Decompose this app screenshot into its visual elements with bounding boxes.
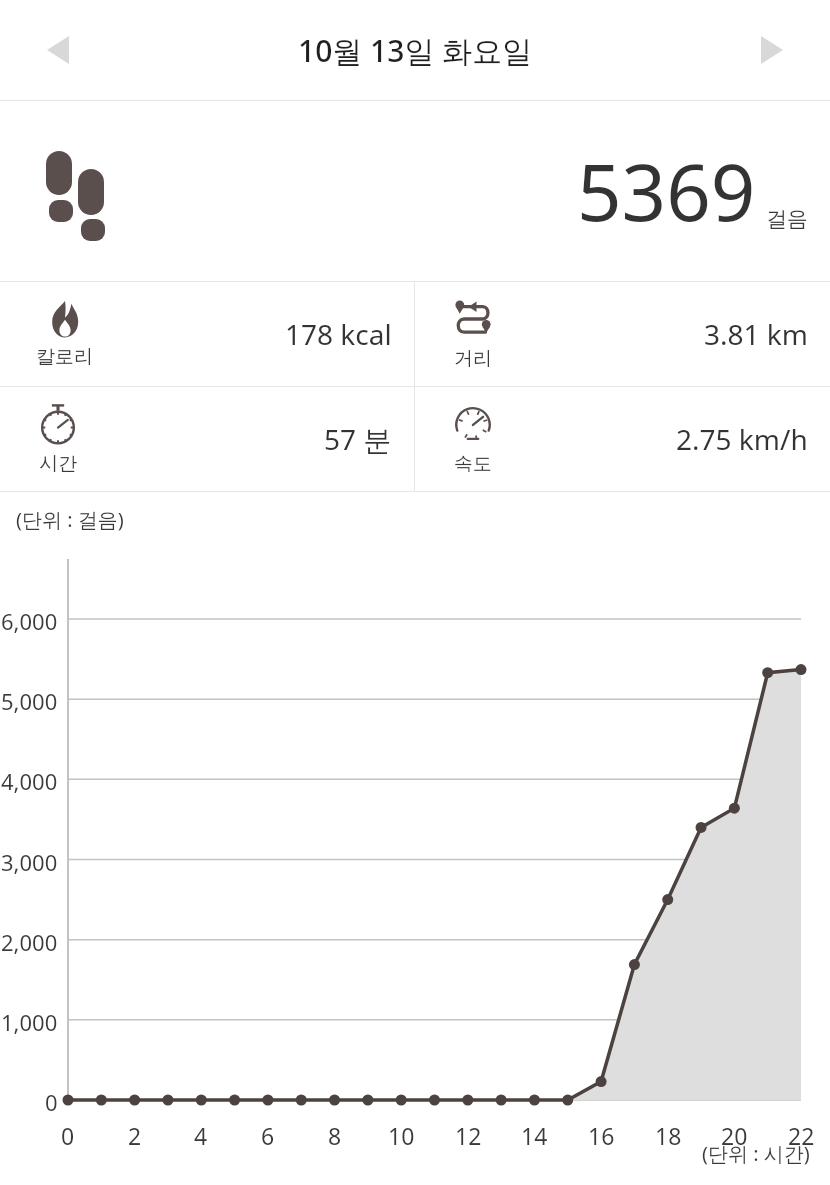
staticText: 2.75 km/h: [676, 420, 808, 458]
staticText: 3.81 km: [704, 315, 808, 353]
staticText: 8: [328, 1120, 342, 1151]
staticText: 6,000: [1, 606, 58, 636]
staticText: 18: [655, 1120, 682, 1151]
button[interactable]: 속도: [415, 387, 830, 491]
staticText: 20: [721, 1120, 748, 1151]
staticText: 1,000: [1, 1007, 58, 1037]
staticText: 6: [261, 1120, 275, 1151]
staticText: 0: [45, 1087, 58, 1117]
staticText: 칼로리: [36, 345, 93, 369]
button[interactable]: 시간: [0, 387, 414, 491]
staticText: 2,000: [1, 927, 58, 957]
button[interactable]: 칼로리: [0, 282, 414, 386]
staticText: 4: [194, 1120, 208, 1151]
staticText: 22: [788, 1120, 815, 1151]
staticText: 57 분: [324, 420, 392, 458]
staticText: 10월 13일 화요일: [298, 30, 533, 71]
button[interactable]: 5369: [0, 101, 830, 281]
staticText: (단위 : 시간): [702, 1140, 810, 1167]
staticText: 5,000: [1, 686, 58, 716]
button[interactable]: 거리: [415, 282, 830, 386]
staticText: 2: [128, 1120, 142, 1151]
staticText: 거리: [454, 347, 492, 371]
staticText: 14: [521, 1120, 548, 1151]
button[interactable]: Previous day: [18, 10, 98, 90]
staticText: 속도: [454, 452, 492, 476]
staticText: 3,000: [1, 847, 58, 877]
staticText: 4,000: [1, 766, 58, 796]
staticText: 시간: [39, 452, 77, 476]
staticText: 178 kcal: [285, 315, 392, 353]
staticText: 0: [61, 1120, 75, 1151]
staticText: 10: [388, 1120, 415, 1151]
staticText: 16: [588, 1120, 615, 1151]
staticText: (단위 : 걸음): [16, 506, 124, 533]
staticText: 12: [455, 1120, 482, 1151]
button[interactable]: Next day: [732, 10, 812, 90]
staticText: 5369: [577, 138, 756, 244]
staticText: 걸음: [766, 206, 808, 232]
